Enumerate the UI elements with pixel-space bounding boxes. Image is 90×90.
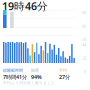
staticText: 平均より41分長く眠りました (3, 80, 55, 85)
staticText: 44 (82, 42, 86, 47)
staticText: 効率 (31, 68, 39, 73)
staticText: 22 (82, 55, 86, 61)
staticText: 99 (82, 10, 86, 15)
staticText: 19時46分 (2, 0, 48, 13)
staticText: 7時間41分 (3, 73, 27, 80)
staticText: 平均 (59, 68, 67, 73)
staticText: 27分 (59, 73, 70, 80)
staticText: 0 (84, 69, 86, 74)
staticText: 94% (31, 73, 42, 80)
staticText: 総睡眠時間 (3, 68, 23, 73)
staticText: 33 (82, 37, 86, 42)
staticText: 66 (82, 23, 86, 29)
